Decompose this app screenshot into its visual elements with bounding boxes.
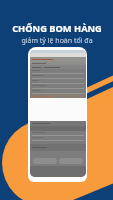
staticText: giảm tỷ lệ hoàn tối đa: [21, 36, 93, 46]
staticText: CHỐNG BOM HÀNG: [12, 22, 102, 35]
